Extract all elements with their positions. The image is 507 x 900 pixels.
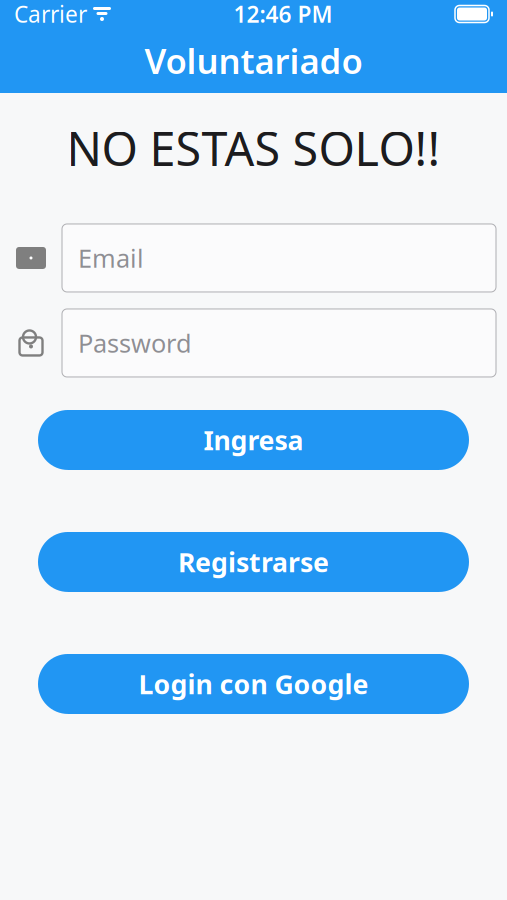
button[interactable]: Ingresa [38,410,469,470]
staticText: Login con Google [138,666,368,702]
staticText: Email [78,241,144,275]
staticText: Registrarse [178,544,329,580]
staticText: Voluntariado [144,37,362,83]
staticText: Ingresa [203,422,303,458]
staticText: Password [78,326,192,360]
button[interactable]: Login con Google [38,654,469,714]
button[interactable]: Email [62,224,496,292]
button[interactable]: Registrarse [38,532,469,592]
staticText: 12:46 PM [233,0,332,29]
button[interactable]: Password [62,309,496,377]
staticText: NO ESTAS SOLO!! [66,117,440,179]
staticText: Carrier [14,0,87,29]
